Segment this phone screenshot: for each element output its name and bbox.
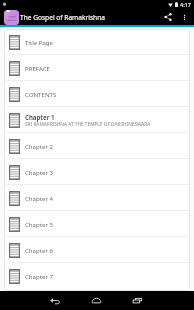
staticText: 4:17	[180, 1, 191, 8]
button[interactable]: Share	[161, 10, 175, 24]
staticText: Chapter 3	[25, 168, 54, 176]
button[interactable]: Chapter 2	[4, 133, 190, 158]
button[interactable]: Chapter 6	[4, 237, 190, 262]
staticText: SRI RAMAKRISHNA AT THE TEMPLE OF DAKSHIN…	[25, 121, 151, 127]
button[interactable]: Chapter 5	[4, 211, 190, 236]
staticText: The Gospel of Ramakrishna	[20, 13, 105, 22]
staticText: Chapter 1	[25, 113, 55, 121]
button[interactable]: Chapter 7	[4, 263, 190, 288]
staticText: Chapter 6	[25, 246, 54, 254]
button[interactable]: Title Page	[4, 29, 190, 54]
button[interactable]: PREFACE	[4, 55, 190, 80]
button[interactable]: Chapter 4	[4, 185, 190, 210]
staticText: PREFACE	[25, 64, 50, 72]
button[interactable]: Home	[83, 291, 109, 310]
button[interactable]: App icon	[4, 10, 19, 25]
button[interactable]: Chapter 1	[4, 107, 190, 132]
button[interactable]: More options	[178, 11, 191, 24]
staticText: CONTENTS	[25, 90, 57, 98]
button[interactable]: CONTENTS	[4, 81, 190, 106]
staticText: Chapter 7	[25, 272, 54, 280]
button[interactable]: Recent apps	[124, 291, 150, 310]
staticText: Title Page	[25, 38, 54, 46]
button[interactable]: Back	[42, 291, 68, 310]
staticText: Chapter 5	[25, 220, 54, 228]
staticText: Chapter 4	[25, 194, 54, 202]
staticText: Chapter 2	[25, 142, 54, 150]
button[interactable]: Chapter 3	[4, 159, 190, 184]
